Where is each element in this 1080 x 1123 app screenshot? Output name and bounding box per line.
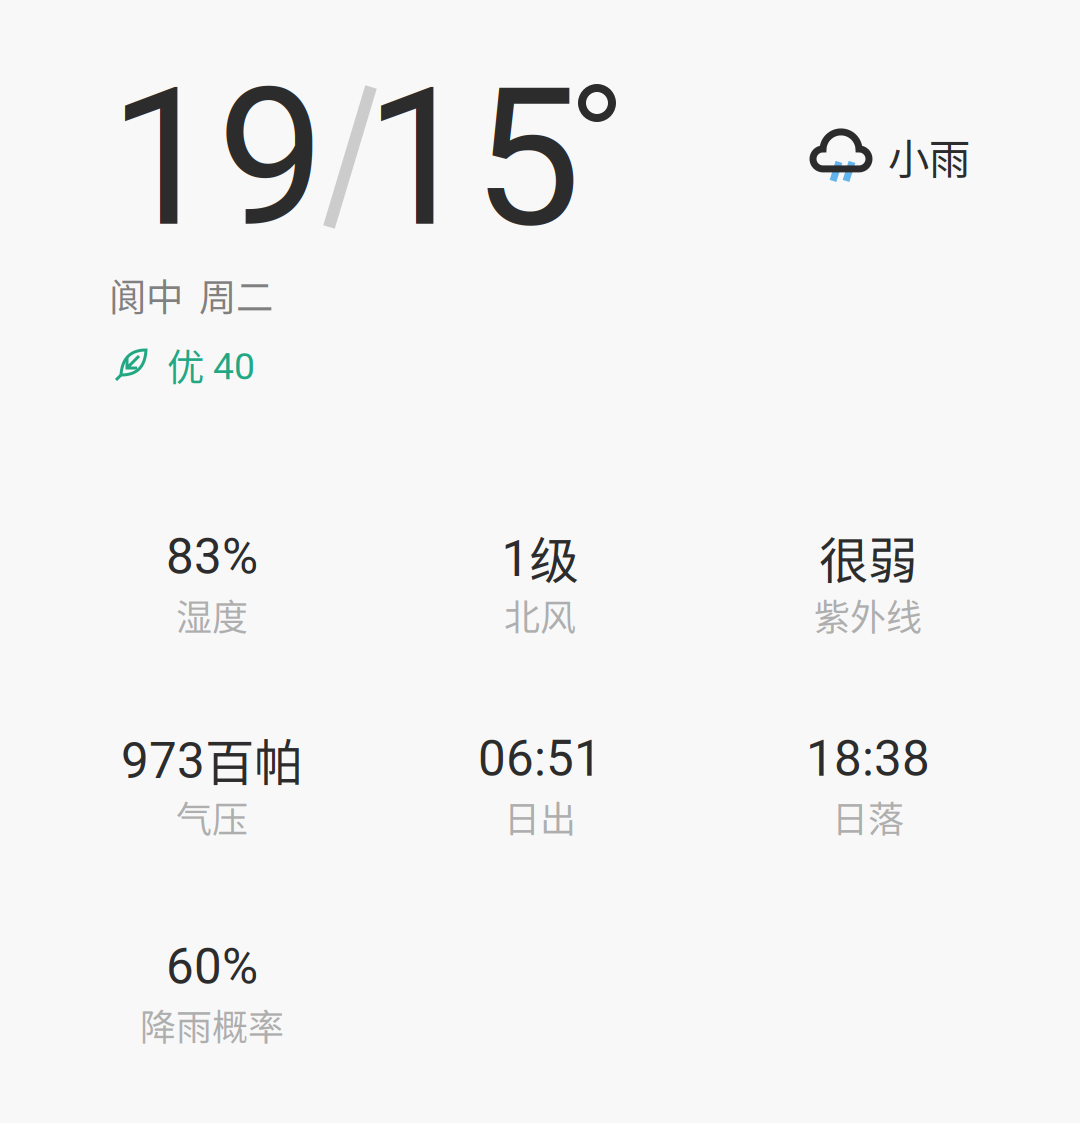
staticText: 小雨 <box>888 126 970 186</box>
button[interactable]: 06:51 <box>376 735 704 837</box>
button[interactable]: 18:38 <box>704 735 1032 837</box>
staticText: 15 <box>365 45 581 270</box>
staticText: 北风 <box>504 589 576 641</box>
staticText: 83% <box>166 528 258 586</box>
staticText: 日出 <box>504 791 576 843</box>
staticText: 日落 <box>832 791 904 843</box>
staticText: 19 <box>109 45 325 270</box>
button[interactable]: 973百帕 <box>48 735 376 837</box>
staticText: 60% <box>166 938 258 996</box>
staticText: 优 40 <box>167 338 255 392</box>
staticText: 06:51 <box>478 730 602 788</box>
button[interactable]: 优 40 <box>114 343 255 387</box>
staticText: 1级 <box>501 521 578 593</box>
button[interactable]: 很弱 <box>704 533 1032 635</box>
staticText: 降雨概率 <box>140 999 284 1051</box>
button[interactable]: 1级 <box>376 533 704 635</box>
button[interactable]: 83% <box>48 533 376 635</box>
staticText: 紫外线 <box>814 589 922 641</box>
button[interactable]: 60% <box>48 943 376 1045</box>
staticText: 阆中 周二 <box>109 268 273 322</box>
staticText: 18:38 <box>806 730 930 788</box>
staticText: 湿度 <box>176 589 248 641</box>
staticText: 气压 <box>176 791 248 843</box>
staticText: 很弱 <box>819 521 917 593</box>
staticText: 973百帕 <box>121 723 303 795</box>
